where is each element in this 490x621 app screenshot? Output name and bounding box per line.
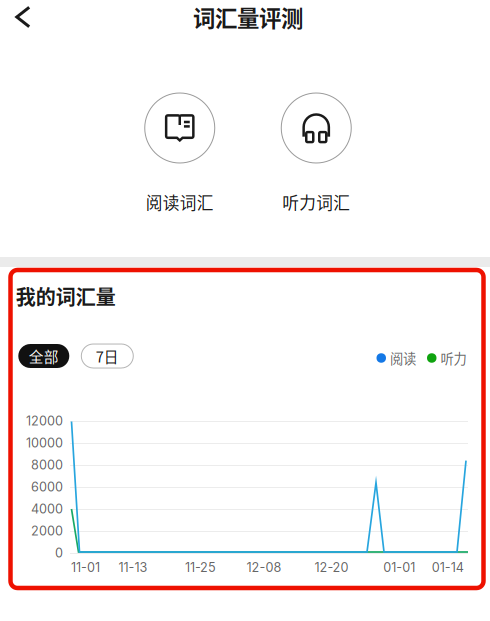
staticText: 01-01 [383,560,415,575]
button[interactable]: Back [0,0,48,38]
button[interactable]: 阅读词汇 [120,93,240,213]
staticText: 听力 [440,348,466,368]
staticText: 12000 [26,413,63,429]
button[interactable]: 7日 [81,344,133,368]
staticText: 我的词汇量 [16,281,116,310]
staticText: 6000 [31,479,63,495]
staticText: 11-01 [71,560,100,575]
staticText: 8000 [31,457,63,473]
staticText: 2000 [31,523,63,539]
button[interactable]: 全部 [18,344,69,368]
staticText: 12-20 [314,560,348,575]
staticText: 听力词汇 [282,190,350,214]
staticText: 阅读词汇 [146,190,214,214]
staticText: 4000 [31,501,63,517]
staticText: 7日 [96,345,119,367]
staticText: 11-13 [119,560,148,575]
staticText: 全部 [29,345,59,367]
staticText: 0 [55,545,63,561]
staticText: 12-08 [246,560,281,575]
staticText: 01-14 [432,560,464,575]
staticText: 阅读 [390,348,416,368]
staticText: 11-25 [185,560,216,575]
staticText: 10000 [26,435,63,451]
button[interactable]: 听力词汇 [256,93,376,213]
staticText: 词汇量评测 [193,1,303,33]
